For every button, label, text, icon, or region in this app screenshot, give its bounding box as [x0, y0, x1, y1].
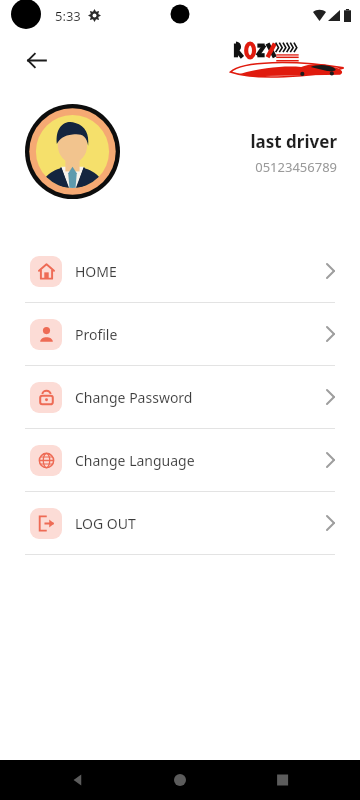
- button[interactable]: HOME: [0, 240, 360, 302]
- staticText: Change Language: [75, 451, 195, 470]
- staticText: 05123456789: [255, 158, 337, 176]
- button[interactable]: Profile: [0, 303, 360, 365]
- button[interactable]: Back: [18, 42, 54, 78]
- staticText: 5:33: [55, 7, 81, 25]
- staticText: Change Password: [75, 388, 193, 407]
- button[interactable]: LOG OUT: [0, 492, 360, 554]
- staticText: last driver: [250, 130, 337, 153]
- staticText: LOG OUT: [75, 514, 136, 533]
- staticText: Profile: [75, 325, 118, 344]
- button[interactable]: Change Language: [0, 429, 360, 491]
- button[interactable]: Change Password: [0, 366, 360, 428]
- staticText: HOME: [75, 262, 117, 281]
